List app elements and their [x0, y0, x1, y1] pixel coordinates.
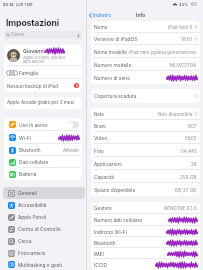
- staticText: Nome: [94, 24, 108, 30]
- staticText: Video: [94, 135, 108, 141]
- button[interactable]: Video: [91, 132, 200, 144]
- button[interactable]: Indirizzo Wi-Fi: [91, 226, 200, 237]
- button[interactable]: Gestore: [91, 202, 200, 214]
- button[interactable]: Apple Arcade gratis per 3 mesi: [4, 97, 82, 109]
- staticText: Spazio disponibile: [94, 187, 136, 193]
- staticText: Indirizzo Wi-Fi: [94, 229, 127, 235]
- button[interactable]: Indietro: [87, 12, 114, 18]
- button[interactable]: Cerca: [4, 31, 82, 39]
- staticText: Impostazioni: [6, 18, 59, 27]
- button[interactable]: Accessibilità: [3, 199, 85, 211]
- staticText: Batteria: [19, 171, 37, 177]
- staticText: WINDTRE 63.0: [164, 205, 197, 211]
- staticText: altro ancora: [23, 59, 44, 63]
- staticText: Apple Pencil: [18, 214, 47, 220]
- staticText: iPad mini (quinta generazione): [129, 49, 197, 55]
- staticText: Bluetooth: [19, 147, 41, 153]
- button[interactable]: Bluetooth: [91, 237, 200, 248]
- button[interactable]: Dati cellulare: [4, 156, 82, 168]
- button[interactable]: Applicazioni: [91, 157, 200, 170]
- button[interactable]: Nome: [91, 21, 200, 33]
- button[interactable]: Cerca: [3, 235, 85, 247]
- button[interactable]: IMEI: [91, 248, 200, 259]
- staticText: Centro di Controllo: [18, 226, 61, 232]
- staticText: IMEI: [94, 251, 104, 257]
- staticText: Foto: [94, 148, 104, 154]
- staticText: Wi-Fi: [19, 135, 32, 141]
- staticText: Giovanni: [23, 48, 45, 54]
- button[interactable]: Nessun backup di iPad: [4, 79, 82, 92]
- staticText: MUXC2T9A: [170, 62, 197, 68]
- staticText: 18.6.1: [181, 36, 193, 42]
- staticText: Non disponibile: [158, 111, 193, 117]
- staticText: Versione di iPadOS: [94, 36, 138, 42]
- staticText: Copertura scaduta: [94, 93, 137, 99]
- staticText: Apple Arcade gratis per 3 mesi: [7, 100, 75, 106]
- button[interactable]: Uso in aereo: [4, 118, 82, 131]
- staticText: Apple Account, iCloud e: [23, 55, 66, 59]
- staticText: Lun 1 set: [16, 2, 33, 7]
- staticText: Rete: [94, 111, 105, 117]
- button[interactable]: Versione di iPadOS: [91, 33, 200, 45]
- staticText: 28: [191, 161, 197, 167]
- staticText: Cerca: [18, 238, 32, 244]
- button[interactable]: Spazio disponibile: [91, 183, 200, 196]
- staticText: Generali: [18, 190, 37, 196]
- button[interactable]: Famiglia: [4, 66, 82, 79]
- button[interactable]: Rete: [91, 108, 200, 120]
- staticText: Info: [136, 12, 146, 18]
- button[interactable]: Batteria: [4, 168, 82, 180]
- button[interactable]: Foto: [91, 144, 200, 157]
- staticText: Indietro: [93, 12, 111, 18]
- staticText: Brani: [94, 123, 106, 129]
- staticText: ICCID: [94, 262, 108, 268]
- staticText: Numero modello: [94, 62, 132, 68]
- staticText: Uso in aereo: [19, 122, 48, 128]
- button[interactable]: Wi-Fi: [4, 131, 82, 144]
- staticText: 54.445: [181, 148, 197, 154]
- button[interactable]: Brani: [91, 120, 200, 132]
- staticText: 195,37 GB: [174, 187, 197, 193]
- staticText: Famiglia: [19, 70, 39, 76]
- staticText: 5905: [185, 135, 197, 141]
- button[interactable]: Numero modello: [91, 58, 200, 71]
- staticText: Applicazioni: [94, 161, 122, 167]
- staticText: Numero dati cellulare: [94, 217, 143, 223]
- button[interactable]: Multitasking e gesti: [3, 259, 85, 270]
- button[interactable]: Apple Pencil: [3, 211, 85, 223]
- button[interactable]: Nome modello: [91, 45, 200, 58]
- button[interactable]: Centro di Controllo: [3, 223, 85, 235]
- staticText: 42%: [179, 2, 189, 7]
- staticText: iPad mini 5: [168, 24, 193, 30]
- staticText: Attivato: [63, 148, 79, 153]
- staticText: Dati cellulare: [19, 159, 49, 165]
- staticText: Nessun backup di iPad: [7, 83, 58, 89]
- staticText: Cerca: [11, 32, 24, 38]
- staticText: Numero di serie: [94, 75, 131, 81]
- staticText: Bluetooth: [94, 240, 116, 246]
- staticText: Fotocamera: [18, 250, 45, 256]
- button[interactable]: Bluetooth: [4, 144, 82, 156]
- button[interactable]: ICCID: [91, 259, 200, 270]
- staticText: Multitasking e gesti: [18, 262, 63, 268]
- staticText: Gestore: [94, 205, 112, 211]
- staticText: Accessibilità: [18, 202, 47, 208]
- button[interactable]: Generali: [3, 187, 85, 199]
- staticText: 1: [76, 84, 78, 88]
- staticText: 20:14: [3, 2, 14, 7]
- button[interactable]: Numero di serie: [91, 71, 200, 84]
- button[interactable]: Copertura scaduta: [91, 89, 200, 103]
- staticText: 256 GB: [180, 174, 197, 180]
- staticText: Capacità: [94, 174, 115, 180]
- staticText: Nome modello: [94, 49, 127, 55]
- staticText: 907: [188, 123, 197, 129]
- button[interactable]: Numero dati cellulare: [91, 214, 200, 226]
- button[interactable]: Fotocamera: [3, 247, 85, 259]
- button[interactable]: Giovanni: [4, 45, 82, 66]
- button[interactable]: Capacità: [91, 170, 200, 183]
